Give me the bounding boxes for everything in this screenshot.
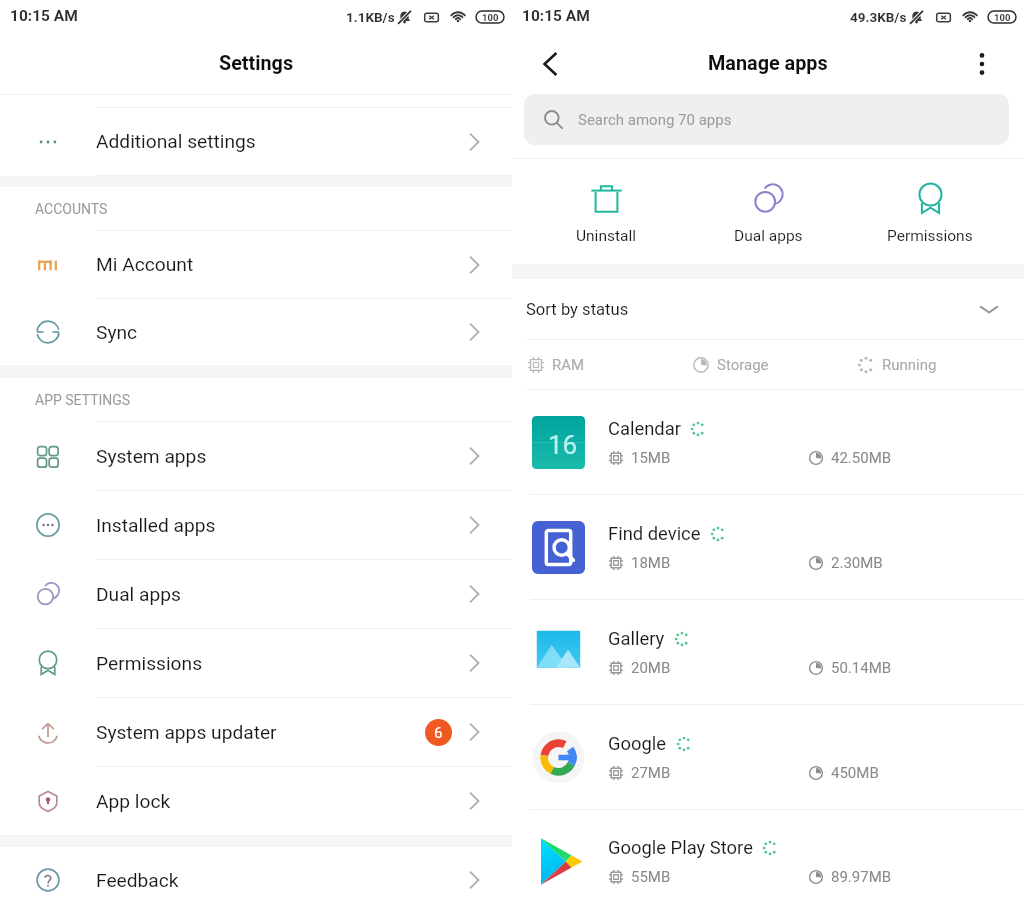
button[interactable]: More options <box>970 52 994 76</box>
button[interactable]: Sort by status <box>512 279 1024 339</box>
button[interactable]: Find device <box>512 495 1024 599</box>
staticText: 1.1KB/s <box>346 9 395 25</box>
staticText: Installed apps <box>96 514 216 537</box>
staticText: Gallery <box>608 628 665 650</box>
staticText: 16 <box>548 430 578 460</box>
staticText: 42.50MB <box>831 449 892 467</box>
staticText: 27MB <box>631 764 671 782</box>
button[interactable]: Permissions <box>0 629 512 697</box>
staticText: 15MB <box>631 449 671 467</box>
button[interactable]: Mi Account <box>0 231 512 298</box>
staticText: Permissions <box>887 227 973 245</box>
staticText: Sync <box>96 321 138 344</box>
staticText: System apps updater <box>96 721 277 744</box>
button[interactable]: Running <box>857 340 937 389</box>
button[interactable]: Installed apps <box>0 491 512 559</box>
button[interactable]: Sync <box>0 299 512 365</box>
button[interactable]: Storage <box>692 340 769 389</box>
button[interactable]: System apps updater <box>0 698 512 766</box>
button[interactable]: 16 <box>512 390 1024 494</box>
staticText: 450MB <box>831 764 879 782</box>
button[interactable]: App lock <box>0 767 512 835</box>
button[interactable]: Back <box>534 48 566 80</box>
button[interactable]: Uninstall <box>525 159 687 264</box>
staticText: Google Play Store <box>608 837 753 859</box>
button[interactable]: RAM <box>527 340 585 389</box>
button[interactable]: Permissions <box>849 159 1011 264</box>
staticText: App lock <box>96 790 171 813</box>
staticText: Calendar <box>608 418 681 440</box>
staticText: 49.3KB/s <box>850 9 907 25</box>
button[interactable]: Dual apps <box>0 560 512 628</box>
staticText: Uninstall <box>576 227 636 245</box>
button[interactable]: Gallery <box>512 600 1024 704</box>
staticText: 18MB <box>631 554 671 572</box>
staticText: APP SETTINGS <box>35 392 131 408</box>
staticText: 50.14MB <box>831 659 892 677</box>
staticText: 100 <box>482 12 499 23</box>
staticText: System apps <box>96 445 207 468</box>
staticText: Storage <box>717 356 769 374</box>
staticText: 100 <box>994 12 1011 23</box>
staticText: Dual apps <box>734 227 803 245</box>
staticText: Additional settings <box>96 130 256 153</box>
staticText: Mi Account <box>96 253 194 276</box>
button[interactable]: Google Play Store <box>512 810 1024 913</box>
button[interactable]: Dual apps <box>687 159 849 264</box>
staticText: 89.97MB <box>831 868 892 886</box>
staticText: Find device <box>608 523 701 545</box>
staticText: Google <box>608 733 667 755</box>
staticText: RAM <box>552 356 585 374</box>
staticText: Permissions <box>96 652 203 675</box>
staticText: 2.30MB <box>831 554 883 572</box>
staticText: 10:15 AM <box>522 7 590 25</box>
staticText: Feedback <box>96 869 179 892</box>
staticText: Manage apps <box>708 52 828 75</box>
staticText: Search among 70 apps <box>578 111 732 129</box>
staticText: 20MB <box>631 659 671 677</box>
staticText: 10:15 AM <box>10 7 78 25</box>
staticText: 55MB <box>631 868 671 886</box>
button[interactable]: Search among 70 apps <box>524 94 1009 145</box>
button[interactable]: Feedback <box>0 847 512 913</box>
staticText: Settings <box>219 52 294 75</box>
button[interactable]: System apps <box>0 422 512 490</box>
staticText: ACCOUNTS <box>35 201 108 217</box>
staticText: 6 <box>434 724 443 742</box>
staticText: Sort by status <box>526 300 629 319</box>
button[interactable]: Google <box>512 705 1024 809</box>
button[interactable]: Additional settings <box>0 108 512 175</box>
staticText: Dual apps <box>96 583 181 606</box>
staticText: Running <box>882 356 937 374</box>
